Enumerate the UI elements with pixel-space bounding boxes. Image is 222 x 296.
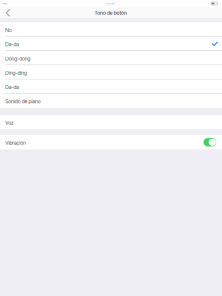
button[interactable]: Back <box>0 7 17 18</box>
staticText: Voz <box>5 120 70 169</box>
button[interactable]: Voz <box>0 115 222 129</box>
staticText: 11:56 am <box>106 2 178 25</box>
button[interactable]: Dong-dong <box>0 51 222 65</box>
button[interactable]: Ding-ding <box>0 65 222 79</box>
button[interactable]: Da-da <box>0 79 222 94</box>
button[interactable]: Vibración <box>0 135 222 149</box>
staticText: iPad <box>2 2 38 25</box>
button[interactable]: Sonido de piano <box>0 94 222 108</box>
staticText: No <box>5 27 56 76</box>
staticText: Da-da <box>5 84 114 133</box>
staticText: Ding-ding <box>5 70 178 119</box>
staticText: Tono de botón <box>94 10 222 59</box>
staticText: Vibración <box>5 140 168 189</box>
button[interactable]: Da-da <box>0 37 222 51</box>
button[interactable]: No <box>0 22 222 37</box>
staticText: Dong-dong <box>5 56 206 105</box>
staticText: Da-da <box>5 41 114 90</box>
staticText: Sonido de piano <box>5 98 222 147</box>
